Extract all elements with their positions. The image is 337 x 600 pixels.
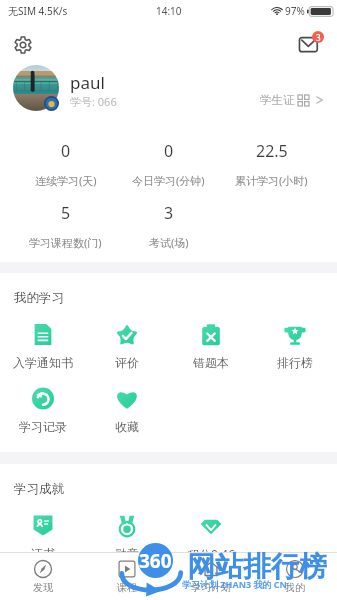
button[interactable]: 0 — [117, 140, 220, 188]
staticText: 5 — [61, 202, 71, 224]
button[interactable]: 0 — [14, 140, 117, 188]
staticText: 3 — [164, 202, 174, 224]
staticText: 我的学习 — [14, 290, 64, 306]
staticText: 错题本 — [193, 355, 229, 370]
staticText: 我的 — [285, 581, 305, 594]
staticText: 无SIM 4.5K/s — [8, 4, 68, 18]
button[interactable]: 我的 — [253, 553, 337, 600]
staticText: 学习成就 — [14, 481, 64, 497]
staticText: 3 — [316, 32, 321, 43]
button[interactable]: 证书 — [0, 514, 85, 561]
button[interactable]: 收藏 — [85, 387, 169, 434]
staticText: 97% — [285, 4, 305, 18]
staticText: 排行榜 — [277, 355, 313, 370]
staticText: 学习记录 — [19, 419, 67, 434]
button[interactable]: 学习记录 — [0, 387, 85, 434]
button[interactable]: 学习计划 — [169, 553, 253, 600]
staticText: 评价 — [115, 355, 139, 370]
staticText: 发现 — [33, 581, 53, 594]
staticText: 连续学习(天) — [35, 173, 97, 188]
staticText: 0 — [61, 140, 71, 162]
staticText: 学习课程数(门) — [29, 235, 102, 250]
button[interactable]: 3 — [117, 202, 220, 250]
staticText: 网站排行榜 — [187, 549, 327, 584]
staticText: 入学通知书 — [13, 355, 73, 370]
staticText: 学号: 066 — [70, 94, 117, 109]
button[interactable]: 入学通知书 — [0, 323, 85, 370]
button[interactable]: 发现 — [0, 553, 85, 600]
staticText: 360 — [139, 548, 172, 574]
staticText: 学习计划 — [191, 581, 231, 594]
staticText: 证书 — [31, 546, 55, 561]
staticText: 勋章 — [115, 546, 139, 561]
staticText: 今日学习(分钟) — [132, 173, 205, 188]
staticText: 收藏 — [115, 419, 139, 434]
button[interactable]: 学生证 — [260, 93, 324, 107]
button[interactable]: 勋章 — [85, 514, 169, 561]
button[interactable]: 5 — [14, 202, 117, 250]
button[interactable]: 评价 — [85, 323, 169, 370]
staticText: 22.5 — [256, 140, 288, 162]
staticText: paul — [70, 71, 105, 94]
staticText: 14:10 — [156, 4, 182, 18]
button[interactable]: 积分0.46 — [169, 514, 253, 562]
button[interactable]: Settings — [11, 33, 35, 57]
button[interactable]: 22.5 — [220, 140, 323, 188]
button[interactable]: Messages — [299, 31, 325, 57]
button[interactable]: 排行榜 — [253, 323, 337, 370]
staticText: 课程 — [117, 581, 137, 594]
staticText: 学生证 — [260, 93, 295, 107]
staticText: 0 — [164, 140, 174, 162]
staticText: 积分0.46 — [187, 546, 235, 562]
staticText: 考试(场) — [149, 235, 189, 250]
staticText: 学习计划 ZHAN3 我的 CN- — [182, 578, 290, 590]
button[interactable]: 课程 — [85, 553, 169, 600]
staticText: 累计学习(小时) — [235, 173, 308, 188]
button[interactable]: 错题本 — [169, 323, 253, 370]
